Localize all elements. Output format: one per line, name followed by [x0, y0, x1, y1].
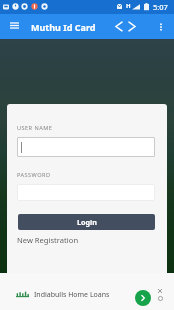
button[interactable]: New Registration [17, 235, 79, 245]
button[interactable]: More options [152, 14, 170, 39]
button[interactable]: Open advertisement [135, 290, 151, 306]
button[interactable]: Open navigation menu [0, 14, 28, 39]
staticText: New Registration [17, 235, 79, 245]
staticText: PASSWORD [17, 171, 51, 179]
staticText: USER NAME [17, 124, 53, 132]
button[interactable] [17, 184, 155, 201]
button[interactable]: Next [124, 14, 140, 39]
button[interactable]: Close ad [157, 288, 163, 294]
button[interactable]: Ad information [157, 295, 163, 301]
staticText: 5:07 [153, 2, 168, 12]
staticText: Indiabulls Home Loans [34, 290, 110, 300]
button[interactable]: Advertisement: Indiabulls Home Loans [0, 277, 174, 310]
button[interactable]: Previous [111, 14, 127, 39]
staticText: Muthu Id Card [31, 21, 96, 33]
staticText: Login [77, 217, 97, 227]
button[interactable]: Login [18, 214, 155, 230]
staticText: H [126, 2, 131, 10]
button[interactable] [17, 137, 155, 157]
